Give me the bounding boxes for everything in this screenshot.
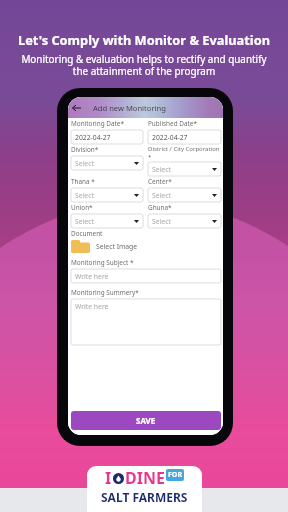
staticText: 2022-04-27 xyxy=(152,133,188,142)
staticText: Document xyxy=(71,229,103,238)
staticText: FOR xyxy=(168,470,182,480)
staticText: Thana * xyxy=(71,177,95,186)
staticText: Select xyxy=(152,217,171,226)
staticText: SAVE xyxy=(136,415,156,426)
staticText: Select xyxy=(75,159,94,168)
button[interactable]: Select Image xyxy=(71,240,221,253)
button[interactable]: Select xyxy=(148,214,221,228)
staticText: District / City Corporation * xyxy=(148,145,220,160)
button[interactable]: Back xyxy=(68,97,85,118)
staticText: Select xyxy=(75,217,94,226)
staticText: Write here xyxy=(75,272,109,281)
button[interactable]: SAVE xyxy=(71,411,221,430)
button[interactable]: Write here xyxy=(71,269,221,283)
button[interactable]: Select xyxy=(71,188,143,202)
staticText: Monitoring Summery* xyxy=(71,288,139,297)
staticText: I xyxy=(105,467,112,489)
staticText: Select xyxy=(75,191,94,200)
button[interactable]: 2022-04-27 xyxy=(148,130,221,144)
button[interactable]: Select xyxy=(71,214,143,228)
staticText: Ghuna* xyxy=(148,203,172,212)
staticText: Select Image xyxy=(96,242,138,251)
button[interactable]: Select xyxy=(148,162,221,176)
staticText: 2022-04-27 xyxy=(75,133,111,142)
staticText: Published Date* xyxy=(148,119,197,128)
staticText: Center* xyxy=(148,177,172,186)
staticText: Monitoring & evaluation helps to rectify… xyxy=(21,52,267,78)
staticText: Monitoring Subject * xyxy=(71,258,134,267)
button[interactable]: 2022-04-27 xyxy=(71,130,143,144)
staticText: Let's Comply with Monitor & Evaluation xyxy=(18,31,270,48)
button[interactable]: Select xyxy=(71,156,143,170)
staticText: Add new Monitoring xyxy=(93,103,166,113)
staticText: SALT FARMERS xyxy=(101,489,188,505)
button[interactable]: Write here xyxy=(71,299,221,345)
staticText: Union* xyxy=(71,203,93,212)
staticText: Division* xyxy=(71,145,99,154)
staticText: DINE xyxy=(125,467,165,489)
staticText: Write here xyxy=(75,302,109,311)
button[interactable]: Select xyxy=(148,188,221,202)
staticText: Monitoring Date* xyxy=(71,119,124,128)
staticText: Select xyxy=(152,191,171,200)
staticText: Select xyxy=(152,165,171,174)
